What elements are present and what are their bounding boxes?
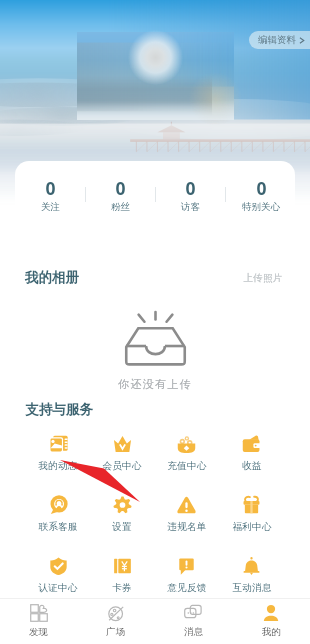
button[interactable]: 0: [15, 161, 85, 227]
staticText: 上传照片: [243, 272, 283, 284]
button[interactable]: 收益: [219, 428, 284, 489]
button[interactable]: 编辑资料: [249, 31, 310, 49]
staticText: 会员中心: [102, 460, 142, 472]
button[interactable]: 会员中心: [90, 428, 154, 489]
button[interactable]: 0: [156, 161, 225, 227]
button[interactable]: 广场: [77, 599, 154, 644]
staticText: 你还没有上传: [118, 377, 192, 391]
staticText: 认证中心: [38, 582, 78, 594]
button[interactable]: 充值中心: [154, 428, 219, 489]
staticText: 0: [185, 176, 196, 200]
staticText: 我的动态: [38, 460, 78, 472]
staticText: 福利中心: [232, 521, 272, 533]
staticText: 发现: [29, 626, 48, 638]
button[interactable]: 我的动态: [26, 428, 90, 489]
staticText: 我的相册: [25, 269, 79, 286]
staticText: 卡券: [112, 582, 132, 594]
staticText: 广场: [106, 626, 125, 638]
button[interactable]: 违规名单: [154, 489, 219, 550]
staticText: 特别关心: [242, 201, 280, 213]
staticText: 粉丝: [111, 201, 130, 213]
staticText: 互动消息: [232, 582, 272, 594]
button[interactable]: 意见反馈: [154, 550, 219, 611]
button[interactable]: 互动消息: [219, 550, 284, 611]
staticText: 0: [45, 176, 56, 200]
staticText: 关注: [41, 201, 60, 213]
button[interactable]: 0: [86, 161, 155, 227]
staticText: 联系客服: [38, 521, 78, 533]
staticText: 收益: [242, 460, 262, 472]
staticText: 充值中心: [167, 460, 207, 472]
button[interactable]: 卡券: [90, 550, 154, 611]
button[interactable]: 联系客服: [26, 489, 90, 550]
button[interactable]: 上传照片: [243, 272, 283, 284]
staticText: 0: [115, 176, 126, 200]
button[interactable]: 福利中心: [219, 489, 284, 550]
button[interactable]: 设置: [90, 489, 154, 550]
staticText: 我的: [262, 626, 281, 638]
staticText: 编辑资料: [258, 34, 296, 46]
staticText: 违规名单: [167, 521, 207, 533]
staticText: 消息: [184, 626, 203, 638]
button[interactable]: 认证中心: [26, 550, 90, 611]
staticText: 意见反馈: [167, 582, 207, 594]
staticText: 0: [256, 176, 267, 200]
button[interactable]: 消息: [154, 599, 232, 644]
staticText: 支持与服务: [25, 401, 93, 418]
staticText: 访客: [181, 201, 200, 213]
button[interactable]: 我的: [232, 599, 310, 644]
button[interactable]: 0: [226, 161, 295, 227]
staticText: 设置: [112, 521, 132, 533]
button[interactable]: 发现: [0, 599, 77, 644]
